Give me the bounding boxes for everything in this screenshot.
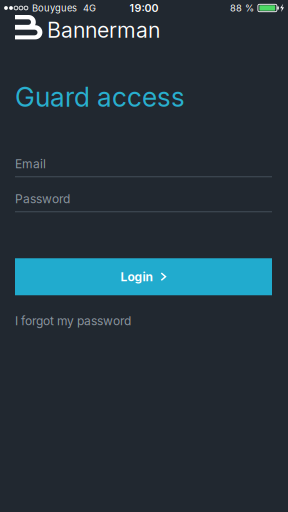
staticText: Login (120, 269, 152, 284)
staticText: Guard access (15, 81, 185, 113)
button[interactable]: Login (15, 258, 272, 295)
staticText: Password (15, 191, 70, 206)
staticText: I forgot my password (15, 313, 131, 328)
staticText: 19:00 (129, 1, 158, 14)
button[interactable]: I forgot my password (15, 314, 131, 327)
staticText: 88 % (230, 2, 254, 14)
staticText: Bouygues (32, 2, 77, 14)
staticText: Email (15, 156, 46, 171)
staticText: Bannerman (47, 17, 160, 43)
staticText: 4G (83, 2, 96, 14)
